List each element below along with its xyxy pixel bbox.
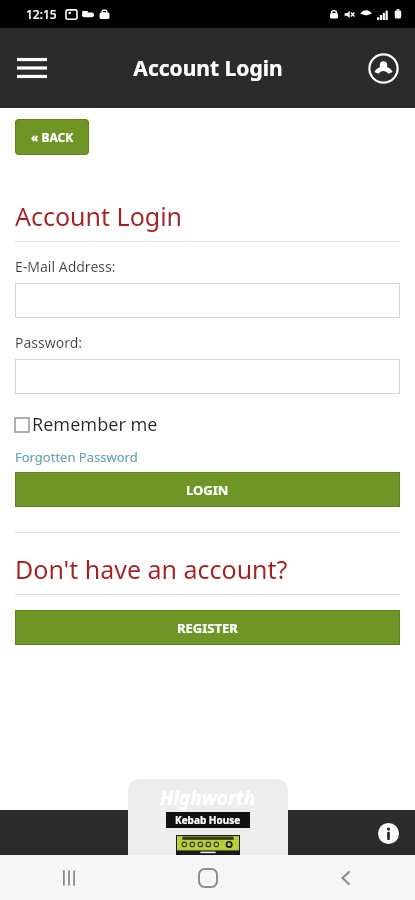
- staticText: Highworth: [160, 785, 256, 811]
- button[interactable]: Highworth Kebab House: [128, 779, 288, 855]
- button[interactable]: Recents: [45, 855, 93, 900]
- staticText: Don't have an account?: [15, 552, 288, 586]
- button[interactable]: Home: [184, 855, 232, 900]
- staticText: Account Login: [133, 54, 283, 83]
- staticText: « BACK: [31, 129, 74, 145]
- staticText: Kebab House: [175, 813, 241, 827]
- button[interactable]: [15, 283, 400, 318]
- button[interactable]: REGISTER: [15, 610, 400, 645]
- button[interactable]: Back: [322, 855, 370, 900]
- staticText: REGISTER: [177, 619, 238, 637]
- button[interactable]: Information: [375, 820, 401, 846]
- staticText: 12:15: [26, 6, 57, 22]
- staticText: LOGIN: [186, 481, 229, 499]
- button[interactable]: Menu: [8, 44, 56, 92]
- button[interactable]: [15, 359, 400, 394]
- staticText: Remember me: [32, 412, 158, 437]
- staticText: Account Login: [15, 199, 183, 233]
- button[interactable]: Account: [361, 46, 405, 90]
- button[interactable]: Remember me: [15, 412, 158, 437]
- staticText: Password:: [15, 333, 83, 352]
- button[interactable]: LOGIN: [15, 472, 400, 507]
- button[interactable]: « BACK: [15, 119, 89, 155]
- staticText: Forgotten Password: [15, 448, 138, 466]
- button[interactable]: Forgotten Password: [15, 448, 138, 466]
- staticText: E-Mail Address:: [15, 257, 116, 276]
